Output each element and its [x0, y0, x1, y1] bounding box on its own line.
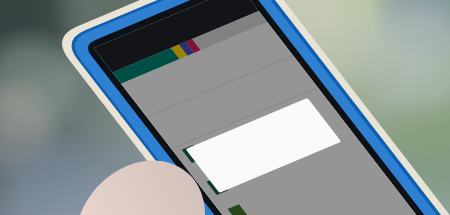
button[interactable]: Phone showing storage settings dialog [0, 0, 450, 215]
